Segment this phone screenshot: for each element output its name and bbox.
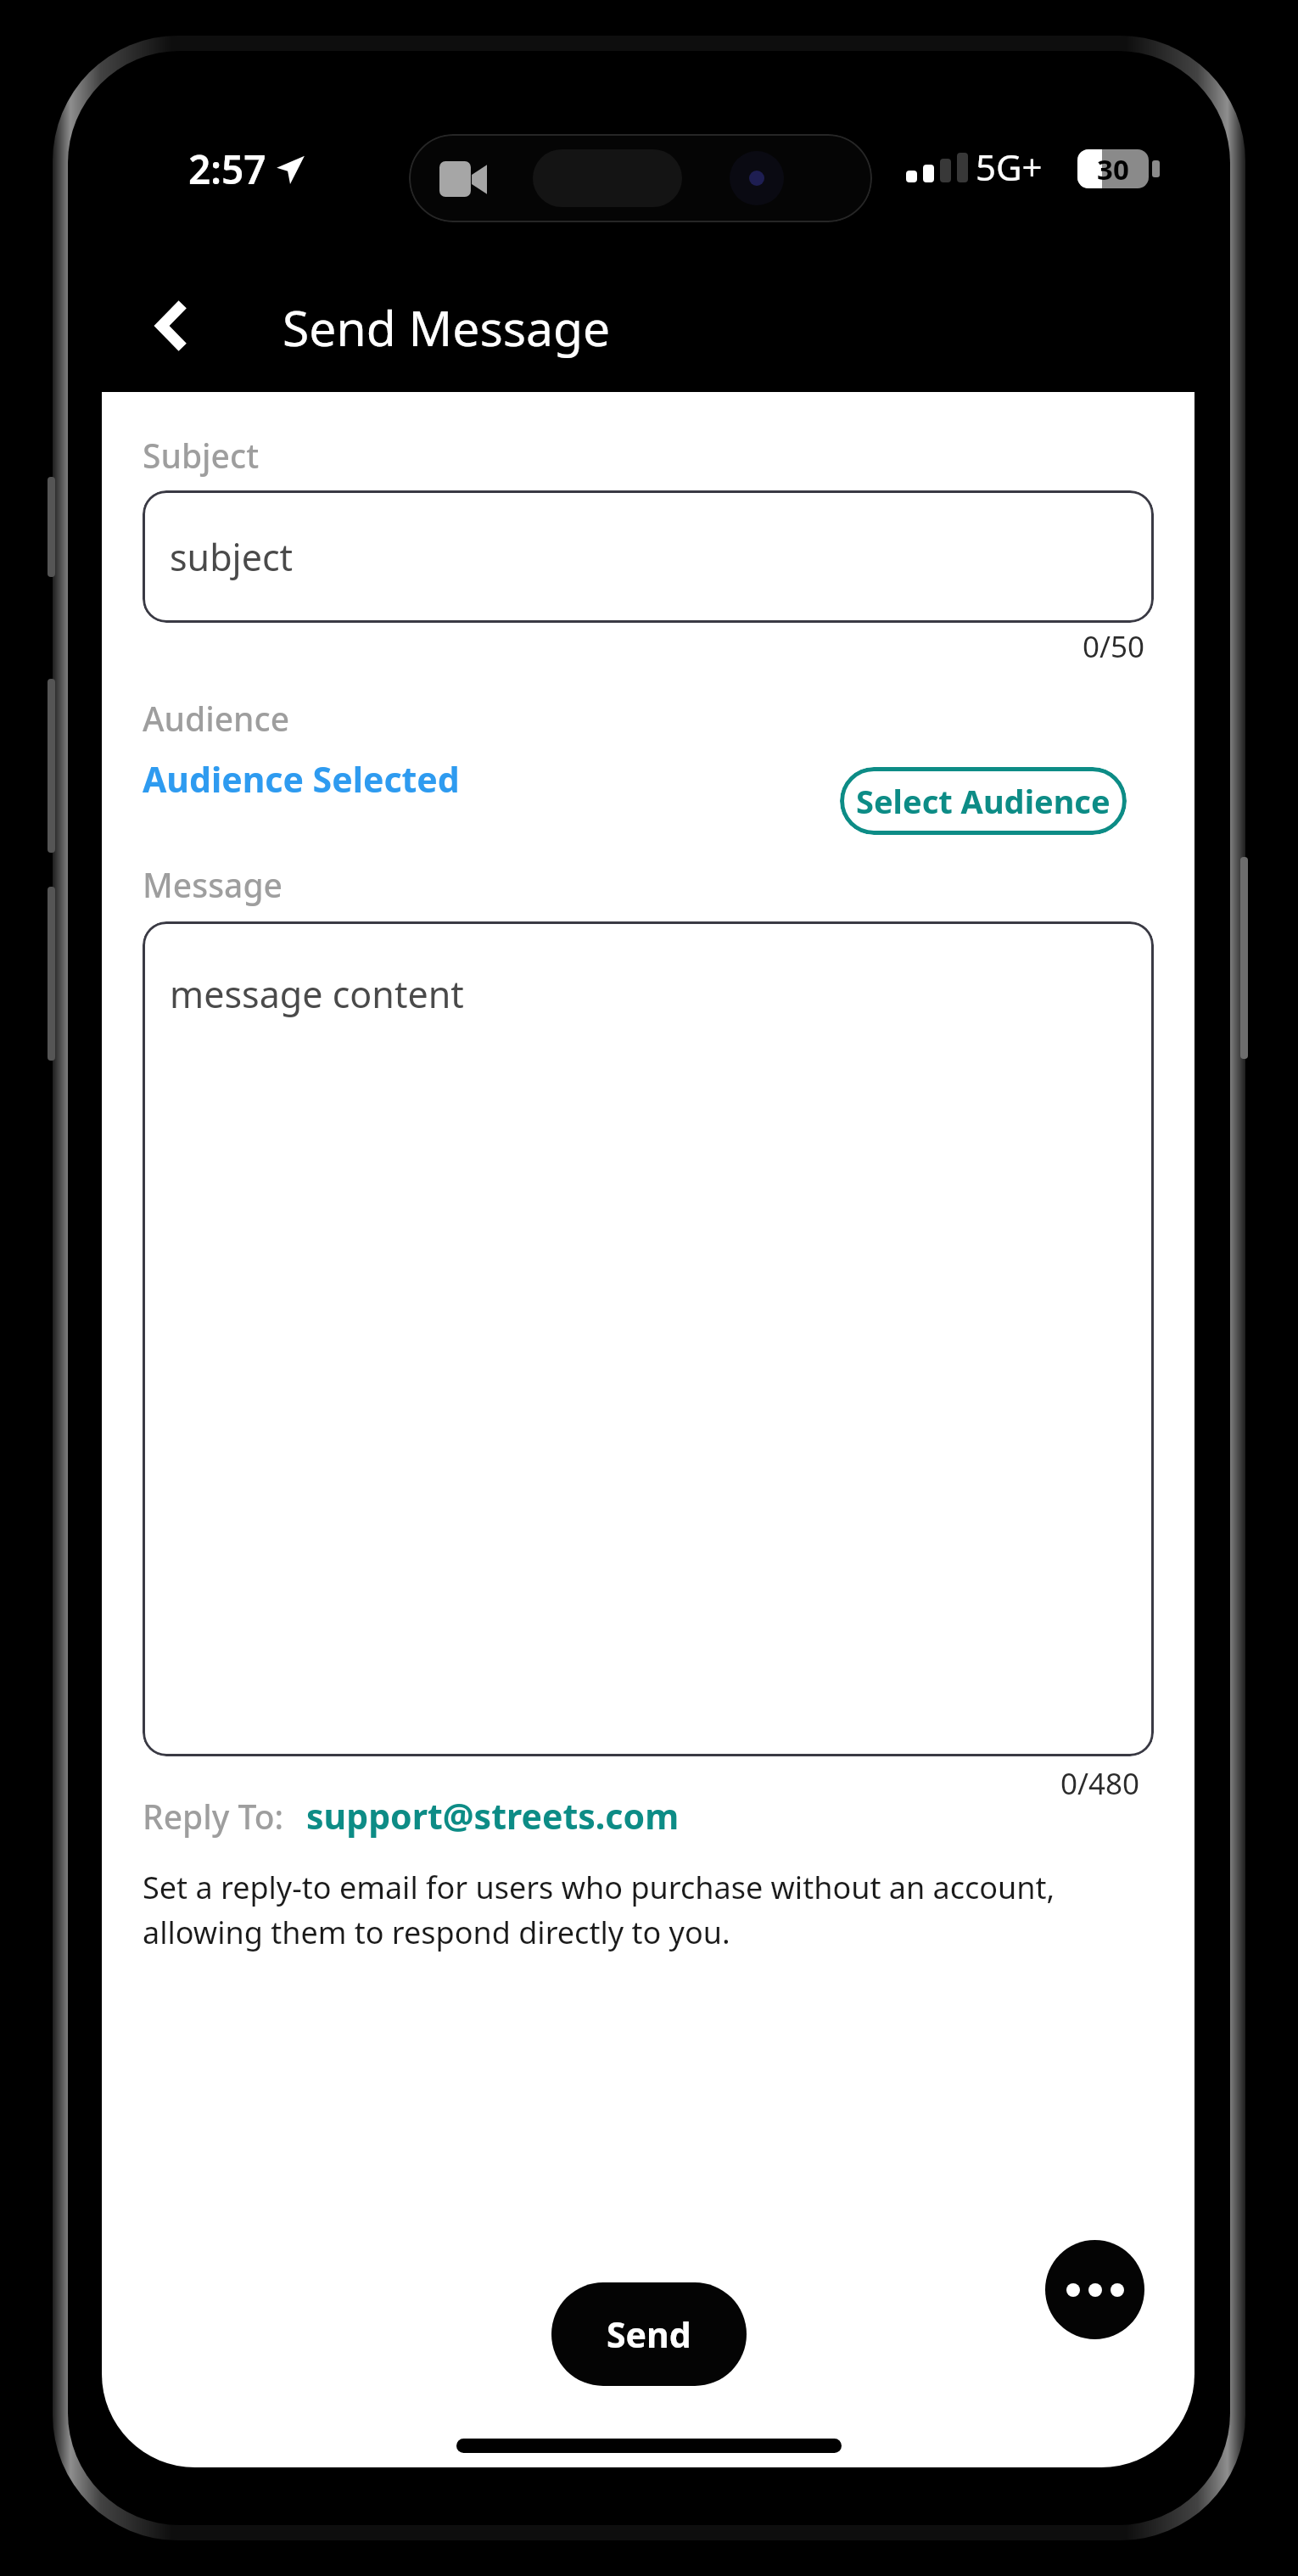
staticText: Subject <box>143 433 260 478</box>
staticText: 5G+ <box>976 143 1043 191</box>
staticText: 0/50 <box>1083 626 1145 667</box>
staticText: Audience <box>143 696 290 741</box>
staticText: 2:57 <box>188 143 266 196</box>
staticText: Select Audience <box>856 779 1111 823</box>
staticText: Message <box>143 862 283 907</box>
staticText: subject <box>170 532 294 582</box>
staticText: Send Message <box>283 294 611 361</box>
button[interactable]: subject <box>143 490 1154 623</box>
staticText: Audience Selected <box>143 755 460 803</box>
button[interactable]: Send <box>551 2282 747 2386</box>
button[interactable]: message content <box>143 921 1154 1756</box>
staticText: Send <box>607 2310 691 2358</box>
staticText: support@streets.com <box>306 1792 680 1840</box>
button[interactable]: Back <box>126 278 221 373</box>
button[interactable]: More options <box>1045 2240 1144 2339</box>
staticText: 30 <box>1097 150 1129 188</box>
staticText: Set a reply-to email for users who purch… <box>143 1867 1099 1952</box>
button[interactable]: Audience Selected <box>143 755 460 803</box>
staticText: 0/480 <box>1060 1763 1140 1804</box>
button[interactable]: Select Audience <box>840 767 1127 835</box>
button[interactable]: support@streets.com <box>306 1792 680 1840</box>
staticText: Reply To: <box>143 1794 284 1839</box>
staticText: message content <box>170 969 464 1019</box>
